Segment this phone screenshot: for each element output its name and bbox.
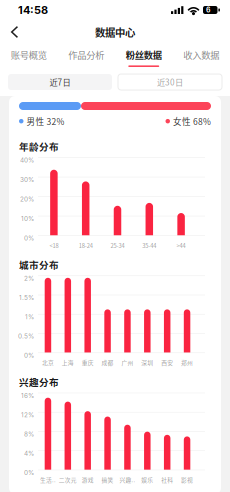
staticText: 10% [21,215,34,223]
staticText: 账号概览 [11,48,47,61]
button[interactable]: 近7日 [8,74,112,90]
staticText: 西安 [161,358,173,367]
staticText: >44 [177,241,186,250]
staticText: 北京 [42,358,54,367]
staticText: 广州 [121,358,133,367]
staticText: 收入数据 [183,48,219,61]
staticText: 近7日 [49,76,70,88]
staticText: 重庆 [82,358,94,367]
button[interactable]: 作品分析 [57,44,115,67]
staticText: 30% [20,176,34,184]
staticText: 兴趣.. [119,476,135,484]
staticText: 生活.. [40,476,56,484]
staticText: 搞笑 [102,476,114,484]
staticText: 近30日 [157,76,183,88]
staticText: 4% [24,449,34,457]
button[interactable]: 账号概览 [0,44,57,67]
staticText: 0% [24,469,34,476]
staticText: 0% [24,234,34,242]
staticText: 女性 68% [173,115,211,127]
staticText: 数据中心 [95,24,135,40]
staticText: 娱乐 [141,476,153,484]
staticText: 成都 [102,358,114,367]
staticText: 8% [24,430,34,438]
staticText: 社科 [161,476,173,484]
button[interactable]: Back [0,20,32,43]
staticText: 16% [21,392,34,399]
staticText: 1.5% [19,294,34,301]
staticText: 20% [20,195,34,203]
button[interactable]: 收入数据 [172,44,230,67]
staticText: 40% [20,156,34,164]
staticText: 年龄分布 [19,139,59,153]
button[interactable]: 近30日 [118,74,222,90]
staticText: 粉丝数据 [126,48,162,61]
button[interactable]: 粉丝数据 [115,44,172,67]
staticText: 14:58 [18,3,48,17]
staticText: 作品分析 [68,48,104,61]
staticText: 上海 [62,358,74,367]
staticText: 0% [24,352,34,359]
staticText: 郑州 [181,358,193,367]
staticText: 深圳 [141,358,153,367]
staticText: 25-34 [110,241,124,250]
staticText: 城市分布 [19,258,59,271]
staticText: 12% [21,411,34,419]
staticText: 18-24 [79,241,93,250]
staticText: <18 [49,241,58,250]
staticText: 男性 32% [26,115,64,127]
staticText: 影视 [181,476,193,484]
staticText: 游戏 [82,476,94,484]
staticText: 0.5% [18,332,34,340]
staticText: 1% [25,313,34,321]
staticText: 兴趣分布 [19,375,59,389]
staticText: 2% [24,275,34,282]
staticText: 6 [206,6,211,14]
staticText: 二次元 [59,476,77,484]
staticText: 35-44 [142,241,156,250]
